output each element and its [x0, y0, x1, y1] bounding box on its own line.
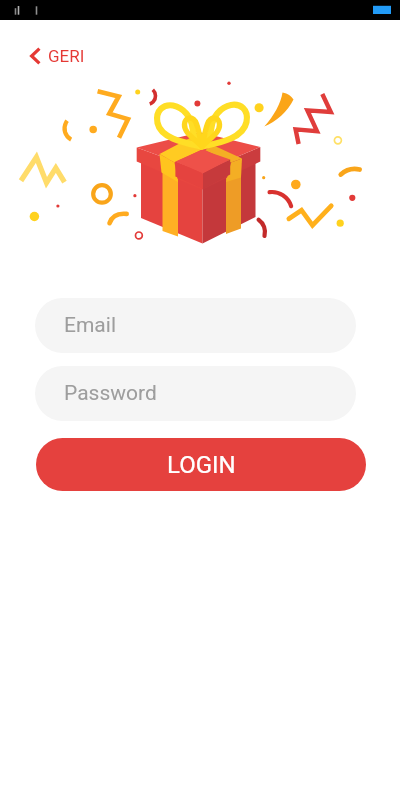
- button[interactable]: Password: [35, 366, 356, 421]
- staticText: LOGIN: [167, 451, 236, 479]
- staticText: GERI: [48, 46, 85, 66]
- button[interactable]: Email: [35, 298, 356, 353]
- button[interactable]: LOGIN: [36, 438, 366, 491]
- staticText: Email: [64, 313, 116, 338]
- staticText: Password: [64, 381, 157, 406]
- button[interactable]: Back: [24, 42, 91, 70]
